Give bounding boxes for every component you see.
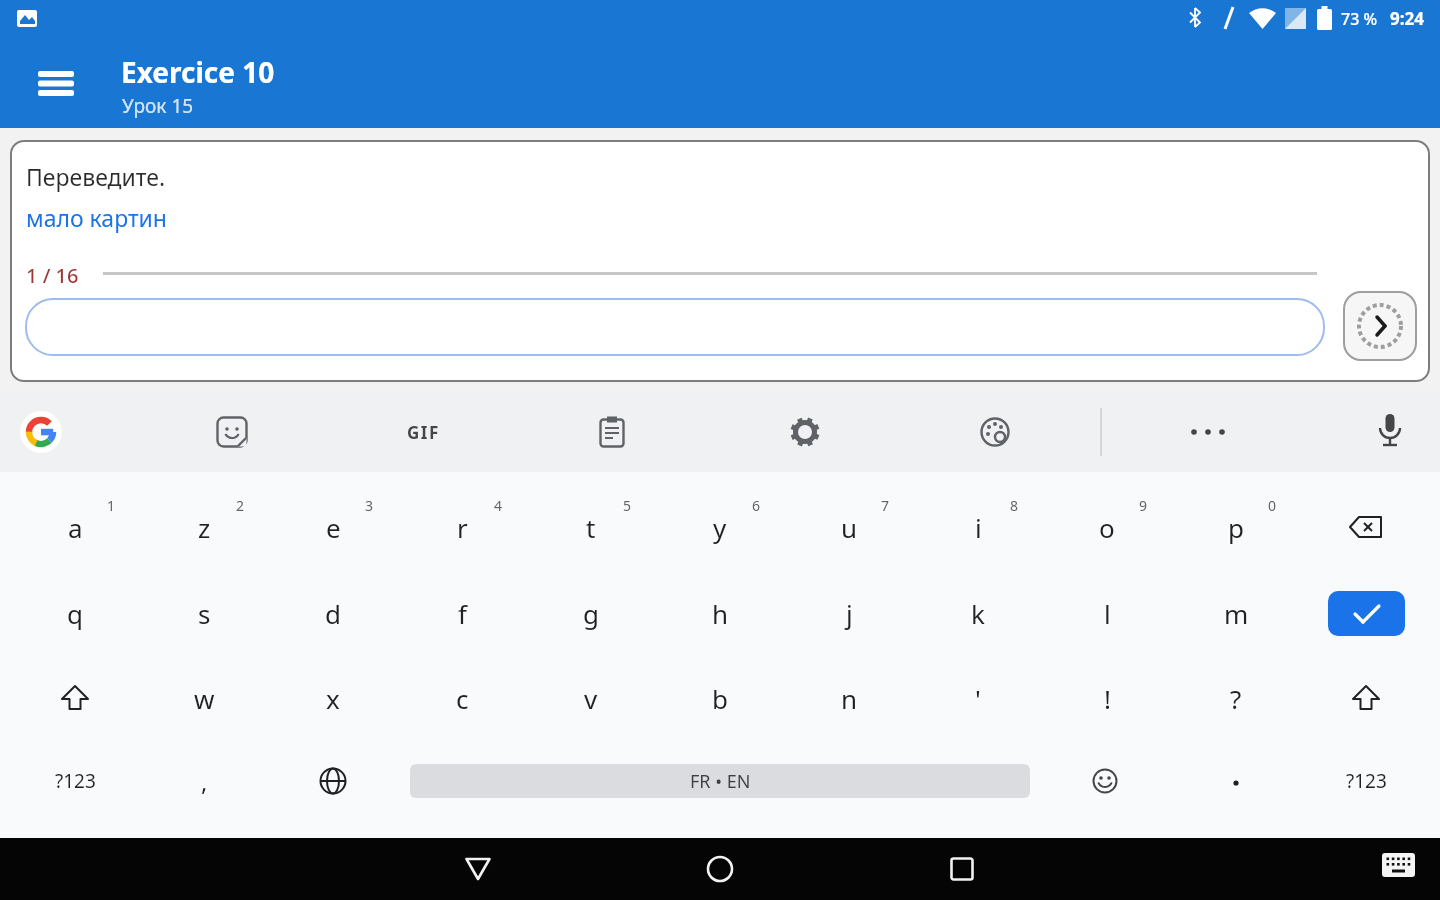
staticText: Урок 15 (122, 93, 194, 119)
staticText: e (326, 510, 341, 545)
staticText: u (841, 510, 858, 545)
button[interactable]: , (140, 741, 268, 821)
staticText: 6 (752, 496, 761, 515)
staticText: Exercice 10 (121, 53, 275, 91)
button[interactable]: e (269, 487, 397, 567)
staticText: a (68, 510, 83, 545)
button[interactable] (11, 658, 139, 738)
staticText: q (67, 596, 83, 631)
staticText: ?123 (55, 768, 96, 794)
staticText: ? (1230, 681, 1242, 716)
button[interactable] (214, 414, 250, 450)
staticText: v (584, 681, 598, 716)
button[interactable] (269, 741, 397, 821)
staticText: 9 (1139, 496, 1148, 515)
button[interactable]: q (11, 573, 139, 653)
button[interactable] (594, 414, 630, 450)
button[interactable]: v (527, 658, 655, 738)
button[interactable]: k (914, 573, 1042, 653)
button[interactable]: y (656, 487, 784, 567)
button[interactable]: d (269, 573, 397, 653)
staticText: h (712, 596, 729, 631)
staticText: 4 (494, 496, 503, 515)
staticText: j (846, 596, 853, 631)
button[interactable]: n (785, 658, 913, 738)
button[interactable]: a (11, 487, 139, 567)
button[interactable]: x (269, 658, 397, 738)
button[interactable]: p (1172, 487, 1300, 567)
button[interactable]: b (656, 658, 784, 738)
staticText: p (1228, 510, 1244, 545)
staticText: y (713, 510, 727, 545)
staticText: ! (1104, 681, 1111, 716)
button[interactable] (25, 298, 1325, 356)
button[interactable]: s (140, 573, 268, 653)
button[interactable]: i (914, 487, 1042, 567)
button[interactable]: f (398, 573, 526, 653)
staticText: 5 (623, 496, 632, 515)
button[interactable] (1302, 658, 1430, 738)
staticText: FR • EN (690, 769, 751, 794)
button[interactable]: r (398, 487, 526, 567)
button[interactable] (442, 842, 514, 896)
staticText: d (325, 596, 341, 631)
staticText: f (458, 596, 467, 631)
staticText: 73 % (1341, 8, 1378, 30)
staticText: 1 (107, 496, 116, 515)
staticText: мало картин (26, 202, 167, 233)
staticText: GIF (407, 421, 440, 444)
staticText: r (457, 510, 468, 545)
button[interactable]: z (140, 487, 268, 567)
staticText: 7 (881, 496, 890, 515)
staticText: 3 (365, 496, 374, 515)
button[interactable]: c (398, 658, 526, 738)
staticText: k (971, 596, 985, 631)
button[interactable] (1302, 487, 1430, 567)
button[interactable]: ' (914, 658, 1042, 738)
button[interactable]: ! (1043, 658, 1171, 738)
staticText: b (712, 681, 728, 716)
button[interactable] (1343, 291, 1417, 361)
button[interactable]: u (785, 487, 913, 567)
button[interactable]: FR • EN (410, 764, 1030, 798)
button[interactable]: GIF (395, 414, 451, 450)
button[interactable] (1065, 741, 1145, 821)
button[interactable]: h (656, 573, 784, 653)
staticText: o (1099, 510, 1115, 545)
staticText: m (1224, 596, 1249, 631)
button[interactable] (30, 62, 78, 106)
button[interactable] (977, 414, 1013, 450)
staticText: t (586, 510, 596, 545)
staticText: n (841, 681, 858, 716)
staticText: 2 (236, 496, 245, 515)
staticText: g (583, 596, 599, 631)
button[interactable] (1378, 846, 1426, 890)
staticText: s (198, 596, 211, 631)
button[interactable]: w (140, 658, 268, 738)
staticText: l (1104, 596, 1111, 631)
staticText: 8 (1010, 496, 1019, 515)
button[interactable]: m (1172, 573, 1300, 653)
staticText: ' (975, 681, 981, 716)
button[interactable] (926, 842, 998, 896)
staticText: w (194, 681, 215, 716)
button[interactable] (1182, 414, 1234, 450)
button[interactable]: g (527, 573, 655, 653)
button[interactable]: o (1043, 487, 1171, 567)
button[interactable] (1372, 412, 1408, 452)
staticText: z (198, 510, 211, 545)
button[interactable]: l (1043, 573, 1171, 653)
button[interactable] (20, 411, 62, 453)
staticText: ?123 (1346, 768, 1387, 794)
button[interactable]: j (785, 573, 913, 653)
staticText: i (975, 510, 982, 545)
button[interactable] (787, 414, 823, 450)
button[interactable] (684, 842, 756, 896)
staticText: , (201, 765, 208, 798)
button[interactable]: ? (1172, 658, 1300, 738)
staticText: x (326, 681, 340, 716)
button[interactable]: t (527, 487, 655, 567)
staticText: 0 (1268, 496, 1277, 515)
button[interactable] (1328, 591, 1405, 636)
staticText: 9:24 (1390, 7, 1424, 30)
